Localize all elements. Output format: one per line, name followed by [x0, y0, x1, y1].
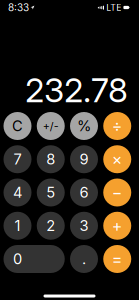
staticText: =	[112, 249, 123, 269]
staticText: +	[112, 216, 123, 235]
button[interactable]: ÷	[103, 112, 131, 140]
button[interactable]: =	[103, 245, 131, 273]
staticText: 2	[46, 217, 55, 235]
staticText: 9	[79, 150, 88, 168]
button[interactable]: +/-	[37, 112, 65, 140]
staticText: 7	[13, 150, 21, 168]
button[interactable]: 3	[70, 212, 98, 240]
button[interactable]: C	[3, 112, 31, 140]
staticText: 0	[13, 250, 22, 268]
button[interactable]: .	[70, 245, 98, 273]
button[interactable]: 4	[3, 178, 31, 206]
staticText: C	[12, 117, 23, 135]
staticText: +/-	[43, 119, 59, 132]
staticText: 5	[46, 184, 55, 201]
button[interactable]: 8	[37, 145, 65, 173]
staticText: ×	[112, 150, 123, 169]
staticText: 232.78	[25, 70, 128, 110]
button[interactable]: 6	[70, 178, 98, 206]
button[interactable]: 0	[3, 245, 65, 273]
button[interactable]: 5	[37, 178, 65, 206]
button[interactable]: %	[70, 112, 98, 140]
button[interactable]: 1	[3, 212, 31, 240]
staticText: 3	[79, 217, 88, 235]
staticText: .	[82, 250, 86, 268]
button[interactable]: +	[103, 212, 131, 240]
button[interactable]: 2	[37, 212, 65, 240]
staticText: 8	[46, 150, 55, 168]
staticText: 1	[14, 217, 20, 235]
staticText: −	[112, 183, 123, 202]
button[interactable]: −	[103, 178, 131, 206]
staticText: 4	[13, 184, 22, 201]
button[interactable]: 7	[3, 145, 31, 173]
staticText: LTE	[106, 2, 121, 13]
staticText: 6	[79, 184, 88, 201]
staticText: %	[77, 117, 91, 135]
staticText: 8:33	[8, 1, 29, 14]
button[interactable]: 9	[70, 145, 98, 173]
staticText: ÷	[112, 116, 123, 136]
button[interactable]: ×	[103, 145, 131, 173]
